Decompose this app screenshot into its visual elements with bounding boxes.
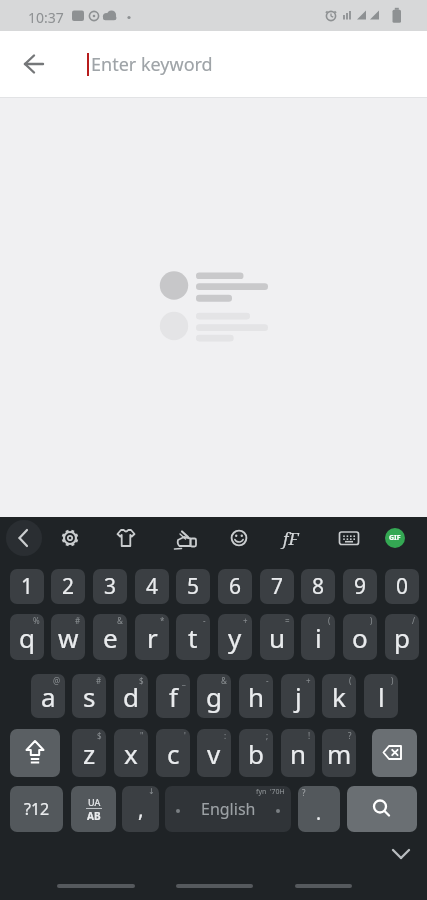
button[interactable]: & bbox=[197, 674, 231, 718]
button[interactable]: ! bbox=[281, 729, 315, 777]
button[interactable]: 7 bbox=[260, 569, 294, 604]
button[interactable]: = bbox=[260, 614, 294, 660]
staticText: ) bbox=[370, 615, 373, 626]
button[interactable]: Enter keyword bbox=[91, 31, 427, 97]
button[interactable]: ( bbox=[322, 674, 356, 718]
staticText: p bbox=[394, 620, 410, 655]
button[interactable]: + bbox=[218, 614, 252, 660]
staticText: ? bbox=[302, 787, 306, 798]
button[interactable]: 6 bbox=[218, 569, 252, 604]
button[interactable]: GIF bbox=[378, 521, 412, 555]
button[interactable] bbox=[53, 521, 87, 555]
button[interactable]: ? bbox=[322, 729, 356, 777]
staticText: m bbox=[327, 736, 352, 771]
staticText: , bbox=[138, 795, 144, 824]
staticText: f bbox=[169, 679, 178, 714]
button[interactable]: % bbox=[10, 614, 44, 660]
button[interactable]: _ bbox=[156, 674, 190, 718]
button[interactable]: 8 bbox=[301, 569, 335, 604]
staticText: 0 bbox=[396, 572, 409, 601]
button[interactable] bbox=[222, 521, 256, 555]
button[interactable]: ↓ bbox=[122, 786, 159, 832]
staticText: w bbox=[58, 620, 79, 655]
staticText: $ bbox=[139, 675, 144, 686]
button[interactable]: $ bbox=[72, 729, 106, 777]
button[interactable] bbox=[347, 786, 417, 832]
button[interactable] bbox=[10, 729, 60, 777]
button[interactable]: ? bbox=[298, 786, 340, 832]
button[interactable]: 5 bbox=[176, 569, 210, 604]
button[interactable] bbox=[176, 884, 253, 888]
button[interactable]: ) bbox=[343, 614, 377, 660]
staticText: u bbox=[269, 620, 286, 655]
button[interactable]: 4 bbox=[135, 569, 169, 604]
button[interactable] bbox=[57, 884, 135, 888]
button[interactable] bbox=[109, 521, 143, 555]
button[interactable]: 1 bbox=[10, 569, 44, 604]
button[interactable]: # bbox=[51, 614, 85, 660]
button[interactable]: - bbox=[239, 674, 273, 718]
button[interactable]: ' bbox=[156, 729, 190, 777]
button[interactable] bbox=[6, 520, 42, 556]
staticText: 10:37 bbox=[28, 8, 64, 27]
button[interactable]: 9 bbox=[343, 569, 377, 604]
button[interactable]: fF bbox=[283, 527, 299, 550]
staticText: English bbox=[201, 798, 256, 820]
button[interactable]: & bbox=[93, 614, 127, 660]
staticText: . bbox=[316, 800, 322, 826]
button[interactable] bbox=[14, 43, 56, 85]
button[interactable]: ?12 bbox=[10, 786, 63, 832]
staticText: & bbox=[117, 615, 123, 626]
button[interactable]: 3 bbox=[93, 569, 127, 604]
staticText: 3 bbox=[104, 572, 117, 601]
staticText: " bbox=[140, 730, 144, 741]
staticText: e bbox=[103, 620, 118, 655]
staticText: 6 bbox=[229, 572, 242, 601]
staticText: # bbox=[96, 675, 102, 686]
button[interactable]: # bbox=[72, 674, 106, 718]
staticText: ! bbox=[308, 730, 311, 741]
staticText: fyn '70H bbox=[256, 787, 285, 797]
staticText: # bbox=[75, 615, 81, 626]
button[interactable]: English bbox=[165, 786, 291, 832]
staticText: a bbox=[41, 679, 56, 714]
button[interactable]: $ bbox=[114, 674, 148, 718]
staticText: s bbox=[83, 679, 96, 714]
button[interactable] bbox=[372, 729, 417, 777]
button[interactable]: : bbox=[197, 729, 231, 777]
button[interactable]: / bbox=[385, 614, 419, 660]
button[interactable]: ) bbox=[364, 674, 398, 718]
button[interactable]: UA bbox=[71, 786, 116, 832]
button[interactable]: 2 bbox=[51, 569, 85, 604]
staticText: 9 bbox=[354, 572, 367, 601]
staticText: 5 bbox=[187, 572, 200, 601]
staticText: c bbox=[167, 736, 180, 771]
button[interactable]: " bbox=[114, 729, 148, 777]
staticText: n bbox=[290, 736, 307, 771]
staticText: ? bbox=[348, 730, 352, 741]
button[interactable]: * bbox=[135, 614, 169, 660]
staticText: $ bbox=[97, 730, 102, 741]
button[interactable]: + bbox=[281, 674, 315, 718]
staticText: q bbox=[19, 620, 35, 655]
staticText: - bbox=[266, 675, 269, 686]
staticText: * bbox=[160, 615, 165, 626]
button[interactable]: fF bbox=[274, 521, 308, 555]
button[interactable]: - bbox=[176, 614, 210, 660]
staticText: ; bbox=[266, 730, 269, 741]
button[interactable] bbox=[385, 842, 417, 866]
staticText: i bbox=[315, 620, 322, 655]
staticText: ) bbox=[391, 675, 394, 686]
button[interactable] bbox=[295, 884, 352, 888]
staticText: ↓ bbox=[148, 787, 155, 796]
button[interactable]: ( bbox=[301, 614, 335, 660]
button[interactable] bbox=[167, 521, 201, 555]
staticText: l bbox=[378, 679, 385, 714]
button[interactable]: @ bbox=[31, 674, 65, 718]
staticText: & bbox=[221, 675, 227, 686]
staticText: ( bbox=[349, 675, 352, 686]
button[interactable] bbox=[332, 521, 366, 555]
staticText: : bbox=[224, 730, 227, 741]
button[interactable]: ; bbox=[239, 729, 273, 777]
button[interactable]: 0 bbox=[385, 569, 419, 604]
